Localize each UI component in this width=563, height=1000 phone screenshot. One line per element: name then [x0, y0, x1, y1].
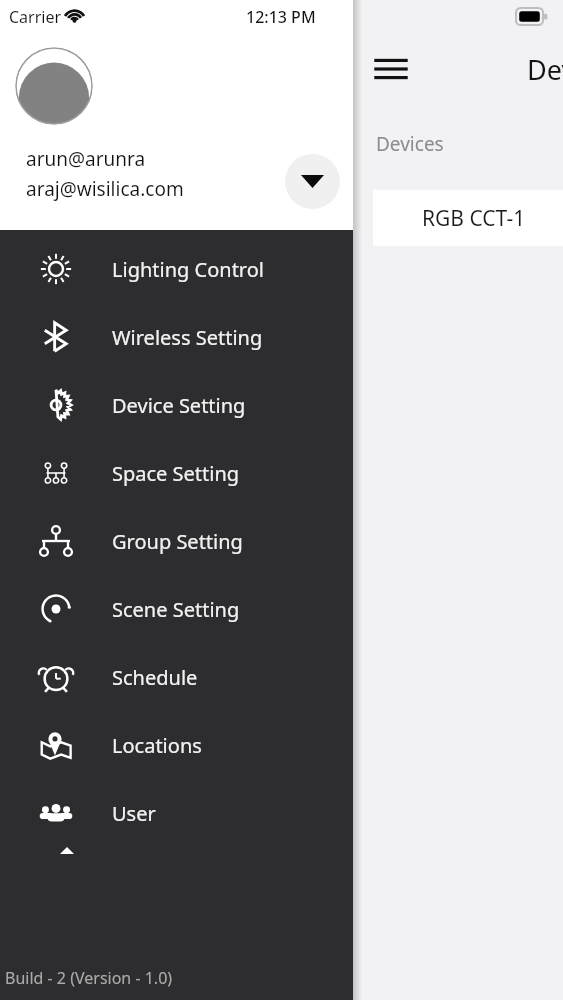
button[interactable]: Lighting Control: [0, 235, 353, 303]
staticText: 12:13 PM: [246, 6, 316, 28]
button[interactable]: Open navigation menu: [369, 47, 413, 91]
staticText: Scene Setting: [112, 596, 240, 623]
staticText: Lighting Control: [112, 256, 264, 283]
staticText: arun@arunra: [26, 146, 146, 172]
button[interactable]: Device Setting: [0, 371, 353, 439]
staticText: Devices: [527, 51, 563, 88]
button[interactable]: Space Setting: [0, 439, 353, 507]
button[interactable]: Wireless Setting: [0, 303, 353, 371]
staticText: Group Setting: [112, 528, 243, 555]
button[interactable]: User: [0, 779, 353, 847]
staticText: Locations: [112, 732, 202, 759]
button[interactable]: Locations: [0, 711, 353, 779]
staticText: Space Setting: [112, 460, 240, 487]
staticText: Build - 2 (Version - 1.0): [5, 967, 173, 989]
button[interactable]: Group Setting: [0, 507, 353, 575]
staticText: Device Setting: [112, 392, 246, 419]
staticText: Schedule: [112, 664, 198, 691]
button[interactable]: Schedule: [0, 643, 353, 711]
button[interactable]: Expand account list: [285, 154, 340, 209]
staticText: User: [112, 800, 156, 827]
staticText: Wireless Setting: [112, 324, 263, 351]
button[interactable]: RGB CCT-1: [373, 190, 563, 246]
staticText: Devices: [376, 131, 444, 157]
staticText: RGB CCT-1: [422, 204, 526, 233]
button[interactable]: Scene Setting: [0, 575, 353, 643]
staticText: araj@wisilica.com: [26, 176, 184, 202]
button[interactable]: Profile photo: [15, 47, 93, 125]
staticText: Carrier: [9, 6, 62, 28]
